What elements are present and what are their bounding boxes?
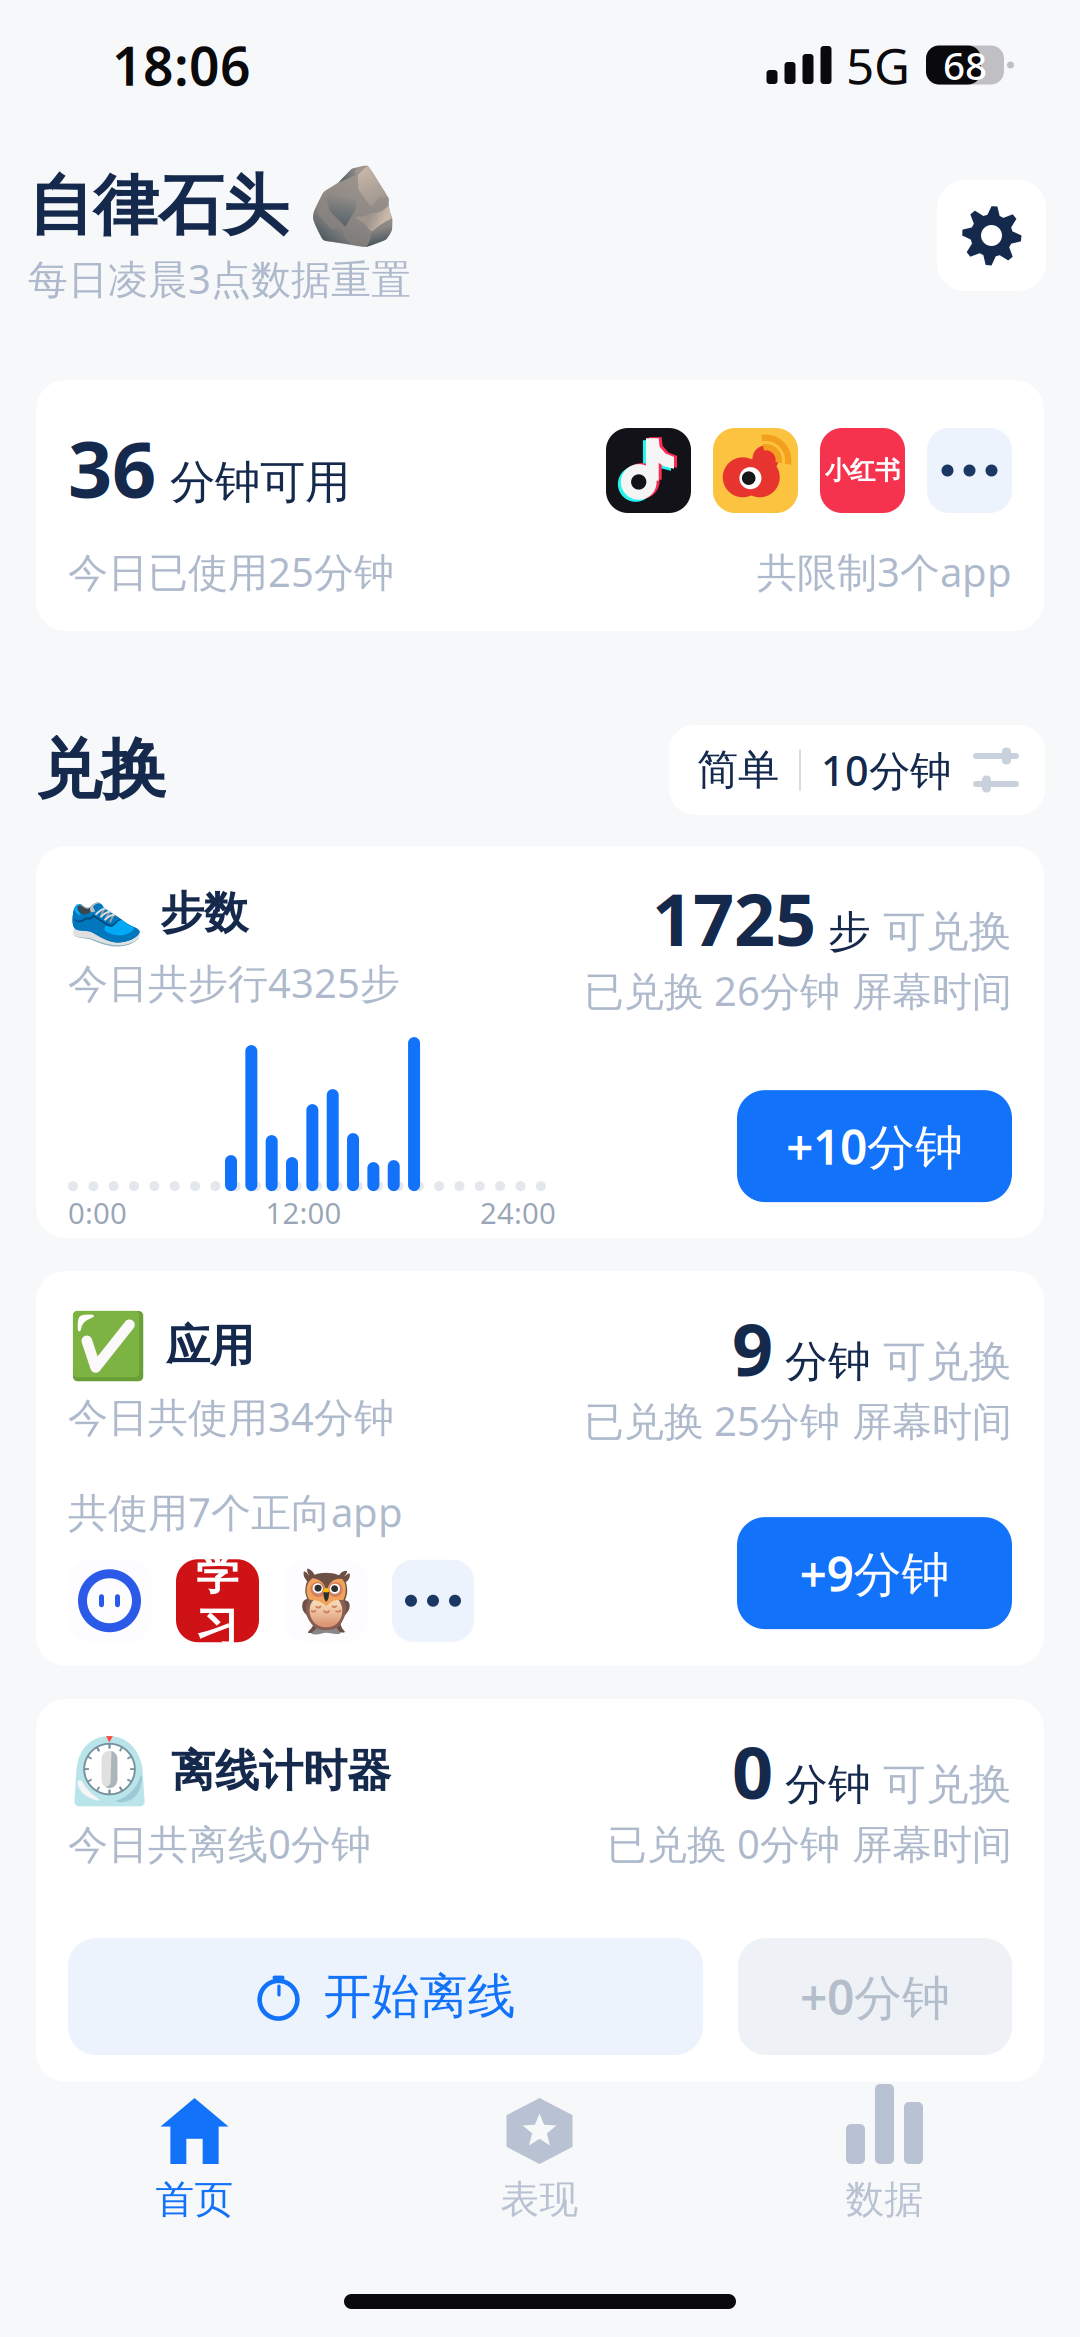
staticText: 共使用7个正向app xyxy=(68,1485,403,1538)
staticText: ✅ xyxy=(68,1309,148,1382)
staticText: 首页 xyxy=(155,2176,233,2223)
staticText: 可兑换 xyxy=(883,905,1012,958)
staticText: 18:06 xyxy=(112,30,251,100)
button[interactable]: 开始离线 xyxy=(68,1938,703,2055)
staticText: 5G xyxy=(846,32,910,98)
staticText: 今日共步行4325步 xyxy=(68,956,400,1009)
staticText: 步数 xyxy=(160,886,248,940)
staticText: 0:00 xyxy=(68,1193,127,1232)
button[interactable]: 首页 xyxy=(22,2098,367,2250)
staticText: 0 xyxy=(732,1723,773,1819)
button[interactable]: +9分钟 xyxy=(737,1517,1012,1629)
staticText: 可兑换 xyxy=(883,1335,1012,1388)
staticText: 每日凌晨3点数据重置 xyxy=(28,252,411,305)
staticText: 数据 xyxy=(845,2176,923,2223)
staticText: 兑换 xyxy=(36,730,166,810)
staticText: 分钟可用 xyxy=(170,455,350,510)
staticText: 24:00 xyxy=(480,1193,556,1232)
staticText: +9分钟 xyxy=(799,1541,949,1605)
staticText: 自律石头 xyxy=(28,166,288,246)
staticText: 🦉 xyxy=(287,1566,363,1636)
staticText: 应用 xyxy=(166,1319,254,1373)
button[interactable]: +10分钟 xyxy=(737,1090,1012,1202)
staticText: 步 xyxy=(828,905,871,958)
staticText: 10分钟 xyxy=(821,743,951,797)
staticText: 已兑换 25分钟 屏幕时间 xyxy=(584,1394,1012,1447)
staticText: 1725 xyxy=(652,870,816,966)
staticText: 9 xyxy=(732,1300,773,1396)
staticText: 今日共离线0分钟 xyxy=(68,1817,371,1870)
button[interactable]: 表现 xyxy=(367,2098,712,2250)
button[interactable]: 简单 xyxy=(669,725,1045,815)
staticText: 共限制3个app xyxy=(757,545,1012,598)
staticText: 36 xyxy=(68,416,156,519)
staticText: 今日共使用34分钟 xyxy=(68,1390,394,1443)
staticText: 小红书 xyxy=(825,455,900,486)
staticText: 分钟 xyxy=(785,1335,871,1388)
staticText: 已兑换 26分钟 屏幕时间 xyxy=(584,964,1012,1017)
button[interactable]: Settings xyxy=(937,180,1046,291)
staticText: 今日已使用25分钟 xyxy=(68,545,394,598)
staticText: 分钟 xyxy=(785,1758,871,1811)
staticText: ⏲️ xyxy=(68,1733,151,1809)
staticText: 离线计时器 xyxy=(171,1744,391,1798)
staticText: 学习 xyxy=(196,1548,239,1653)
button[interactable]: 数据 xyxy=(712,2098,1057,2250)
staticText: 已兑换 0分钟 屏幕时间 xyxy=(607,1817,1012,1870)
staticText: 简单 xyxy=(697,745,779,795)
staticText: +10分钟 xyxy=(786,1114,963,1178)
button[interactable]: +0分钟 xyxy=(738,1938,1012,2055)
staticText: 🪨 xyxy=(306,162,402,250)
staticText: 表现 xyxy=(500,2176,578,2223)
staticText: 68 xyxy=(943,39,987,91)
staticText: 开始离线 xyxy=(323,1967,515,2026)
staticText: 可兑换 xyxy=(883,1758,1012,1811)
staticText: 12:00 xyxy=(265,1193,341,1232)
staticText: 👟 xyxy=(68,878,144,948)
staticText: +0分钟 xyxy=(800,1965,950,2028)
